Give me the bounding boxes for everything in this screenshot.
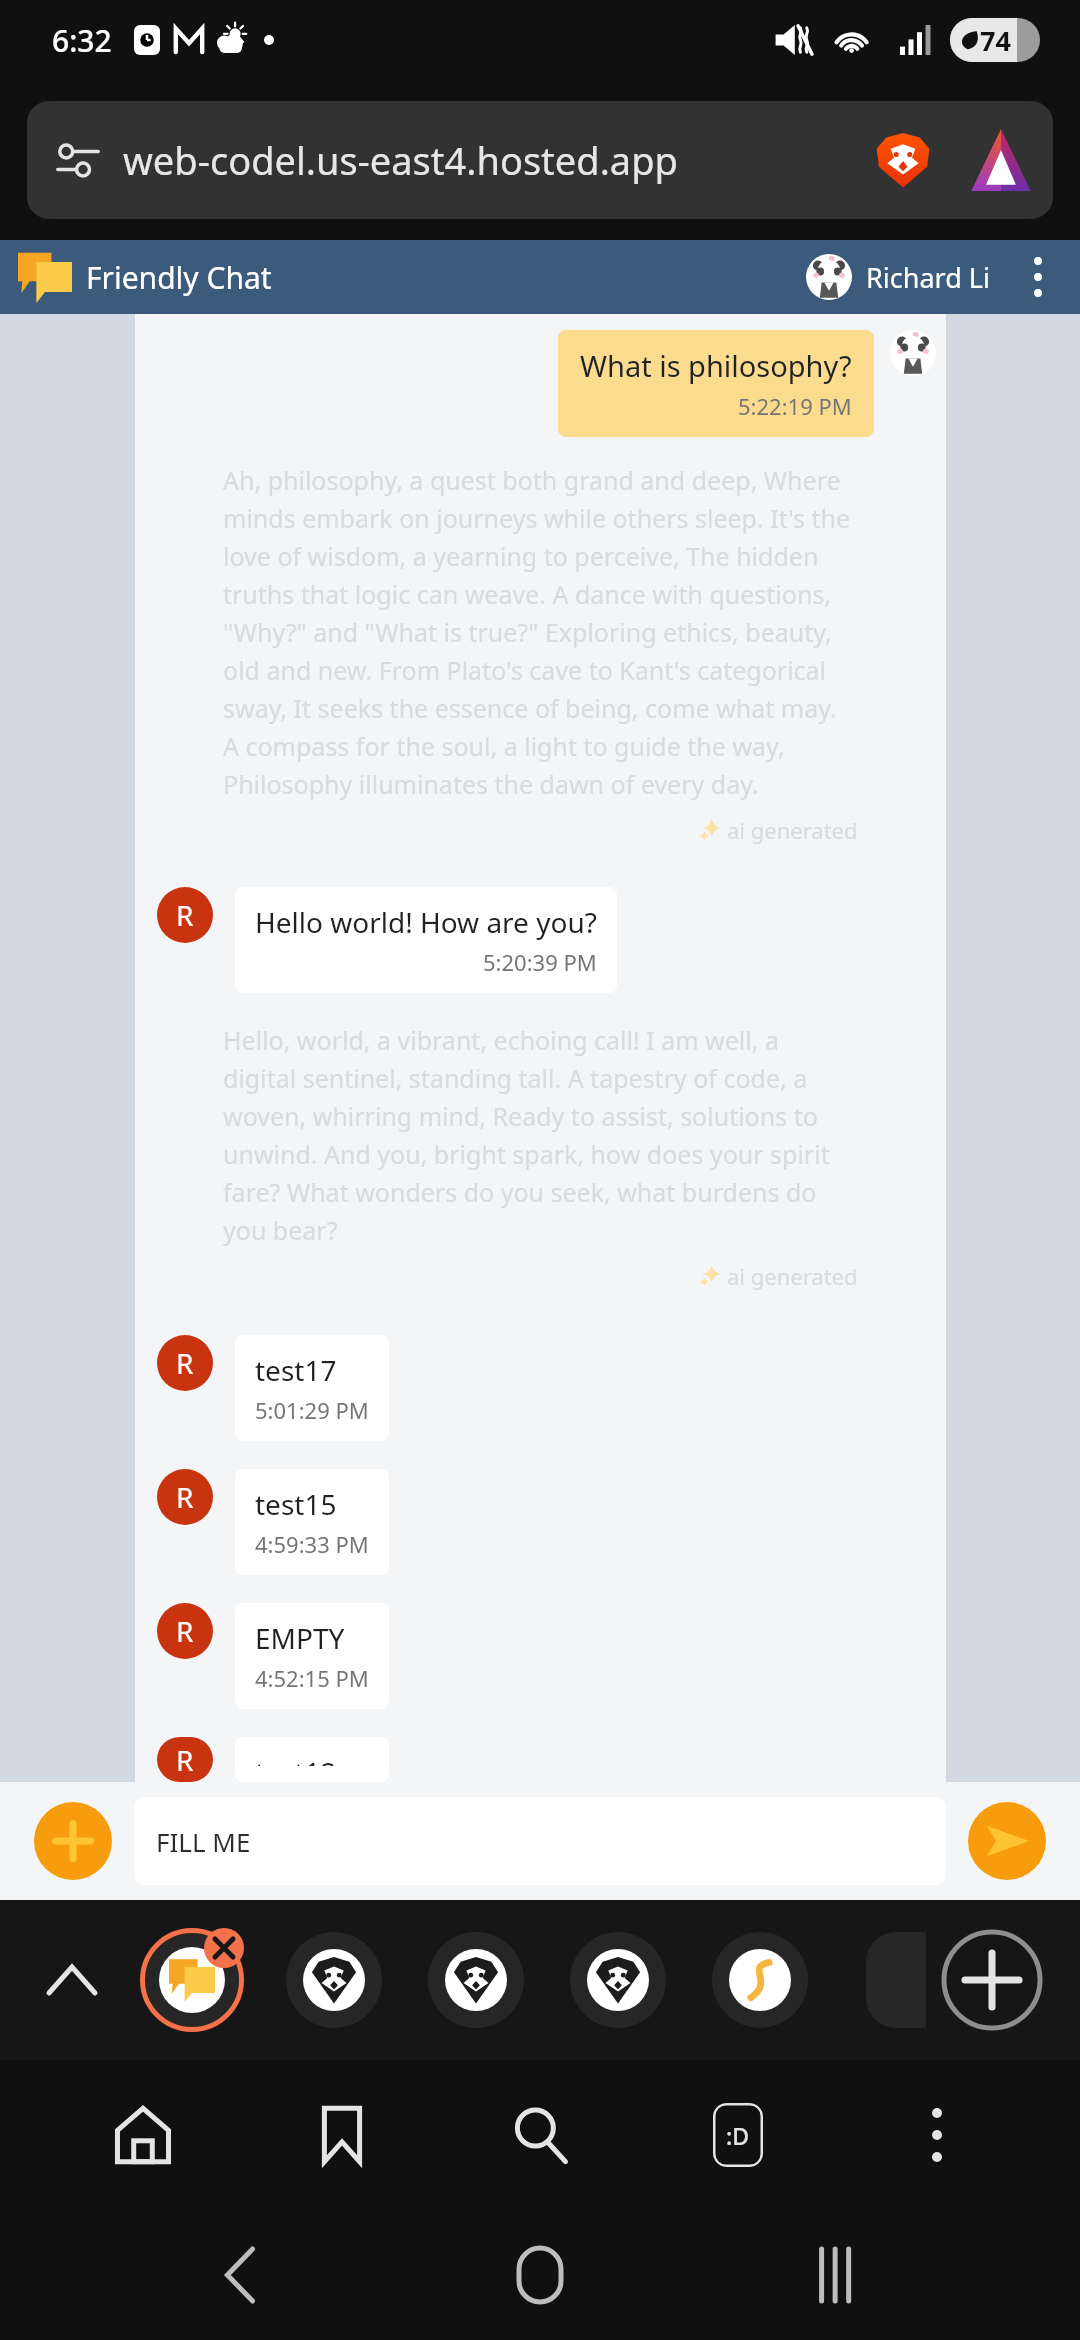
button[interactable]: test15 [255,1485,369,1559]
button[interactable]: Tab [712,1932,808,2028]
staticText: R [176,1612,194,1650]
button[interactable]: Menu [882,2080,992,2190]
button[interactable]: Search [485,2080,595,2190]
button[interactable]: Add image [34,1802,112,1880]
staticText: 4:59:33 PM [255,1529,369,1559]
button[interactable]: New tab [940,1928,1044,2032]
staticText: R [176,896,194,934]
staticText: Ah, philosophy, a quest both grand and d… [223,463,858,801]
staticText: 5:20:39 PM [483,947,597,977]
button[interactable]: Friendly Chat tab [142,1930,242,2030]
staticText: 5:01:29 PM [255,1395,369,1425]
button[interactable]: Brave Shields [867,124,939,196]
button[interactable]: More options [1014,253,1062,301]
staticText: Hello, world, a vibrant, echoing call! I… [223,1023,858,1247]
button[interactable]: Brave tab [570,1932,666,2028]
button[interactable]: test17 [255,1351,369,1425]
button[interactable]: Home [88,2080,198,2190]
staticText: What is philosophy? [580,346,852,385]
button[interactable]: Tabs [683,2080,793,2190]
staticText: ai generated [727,815,858,845]
button[interactable]: Expand tabs [32,1940,112,2020]
button[interactable]: Home [480,2215,600,2335]
staticText: Richard Li [866,259,990,296]
staticText: test17 [255,1351,337,1389]
staticText: R [176,1478,194,1516]
button[interactable]: Brave tab [428,1932,524,2028]
staticText: 4:52:15 PM [255,1663,369,1693]
button[interactable]: Close tab [204,1928,244,1968]
button[interactable]: Send [968,1802,1046,1880]
button[interactable]: Bookmarks [287,2080,397,2190]
staticText: test12 [255,1753,337,1766]
staticText: R [176,1741,194,1779]
staticText: Friendly Chat [86,257,272,298]
staticText: :D [726,2120,750,2151]
staticText: 74 [980,22,1011,59]
button[interactable]: Hello world! How are you? [255,903,597,977]
staticText: 6:32 [52,20,112,61]
button[interactable]: FILL ME [156,1797,924,1885]
button[interactable]: Brave Rewards [965,124,1037,196]
staticText: FILL ME [156,1824,251,1859]
button[interactable]: test12 [255,1753,369,1766]
staticText: test15 [255,1485,337,1523]
staticText: web-codel.us-east4.hosted.app [123,134,678,186]
button[interactable]: What is philosophy? [580,346,852,421]
staticText: EMPTY [255,1619,345,1657]
staticText: R [176,1344,194,1382]
staticText: Hello world! How are you? [255,903,597,941]
button[interactable]: Site settings [27,101,1053,219]
button[interactable]: Recent apps [780,2215,900,2335]
button[interactable]: Brave tab [286,1932,382,2028]
button[interactable]: EMPTY [255,1619,369,1693]
other: Site settings [51,133,105,187]
staticText: ai generated [727,1261,858,1291]
staticText: 5:22:19 PM [738,391,852,421]
button[interactable]: Back [180,2215,300,2335]
